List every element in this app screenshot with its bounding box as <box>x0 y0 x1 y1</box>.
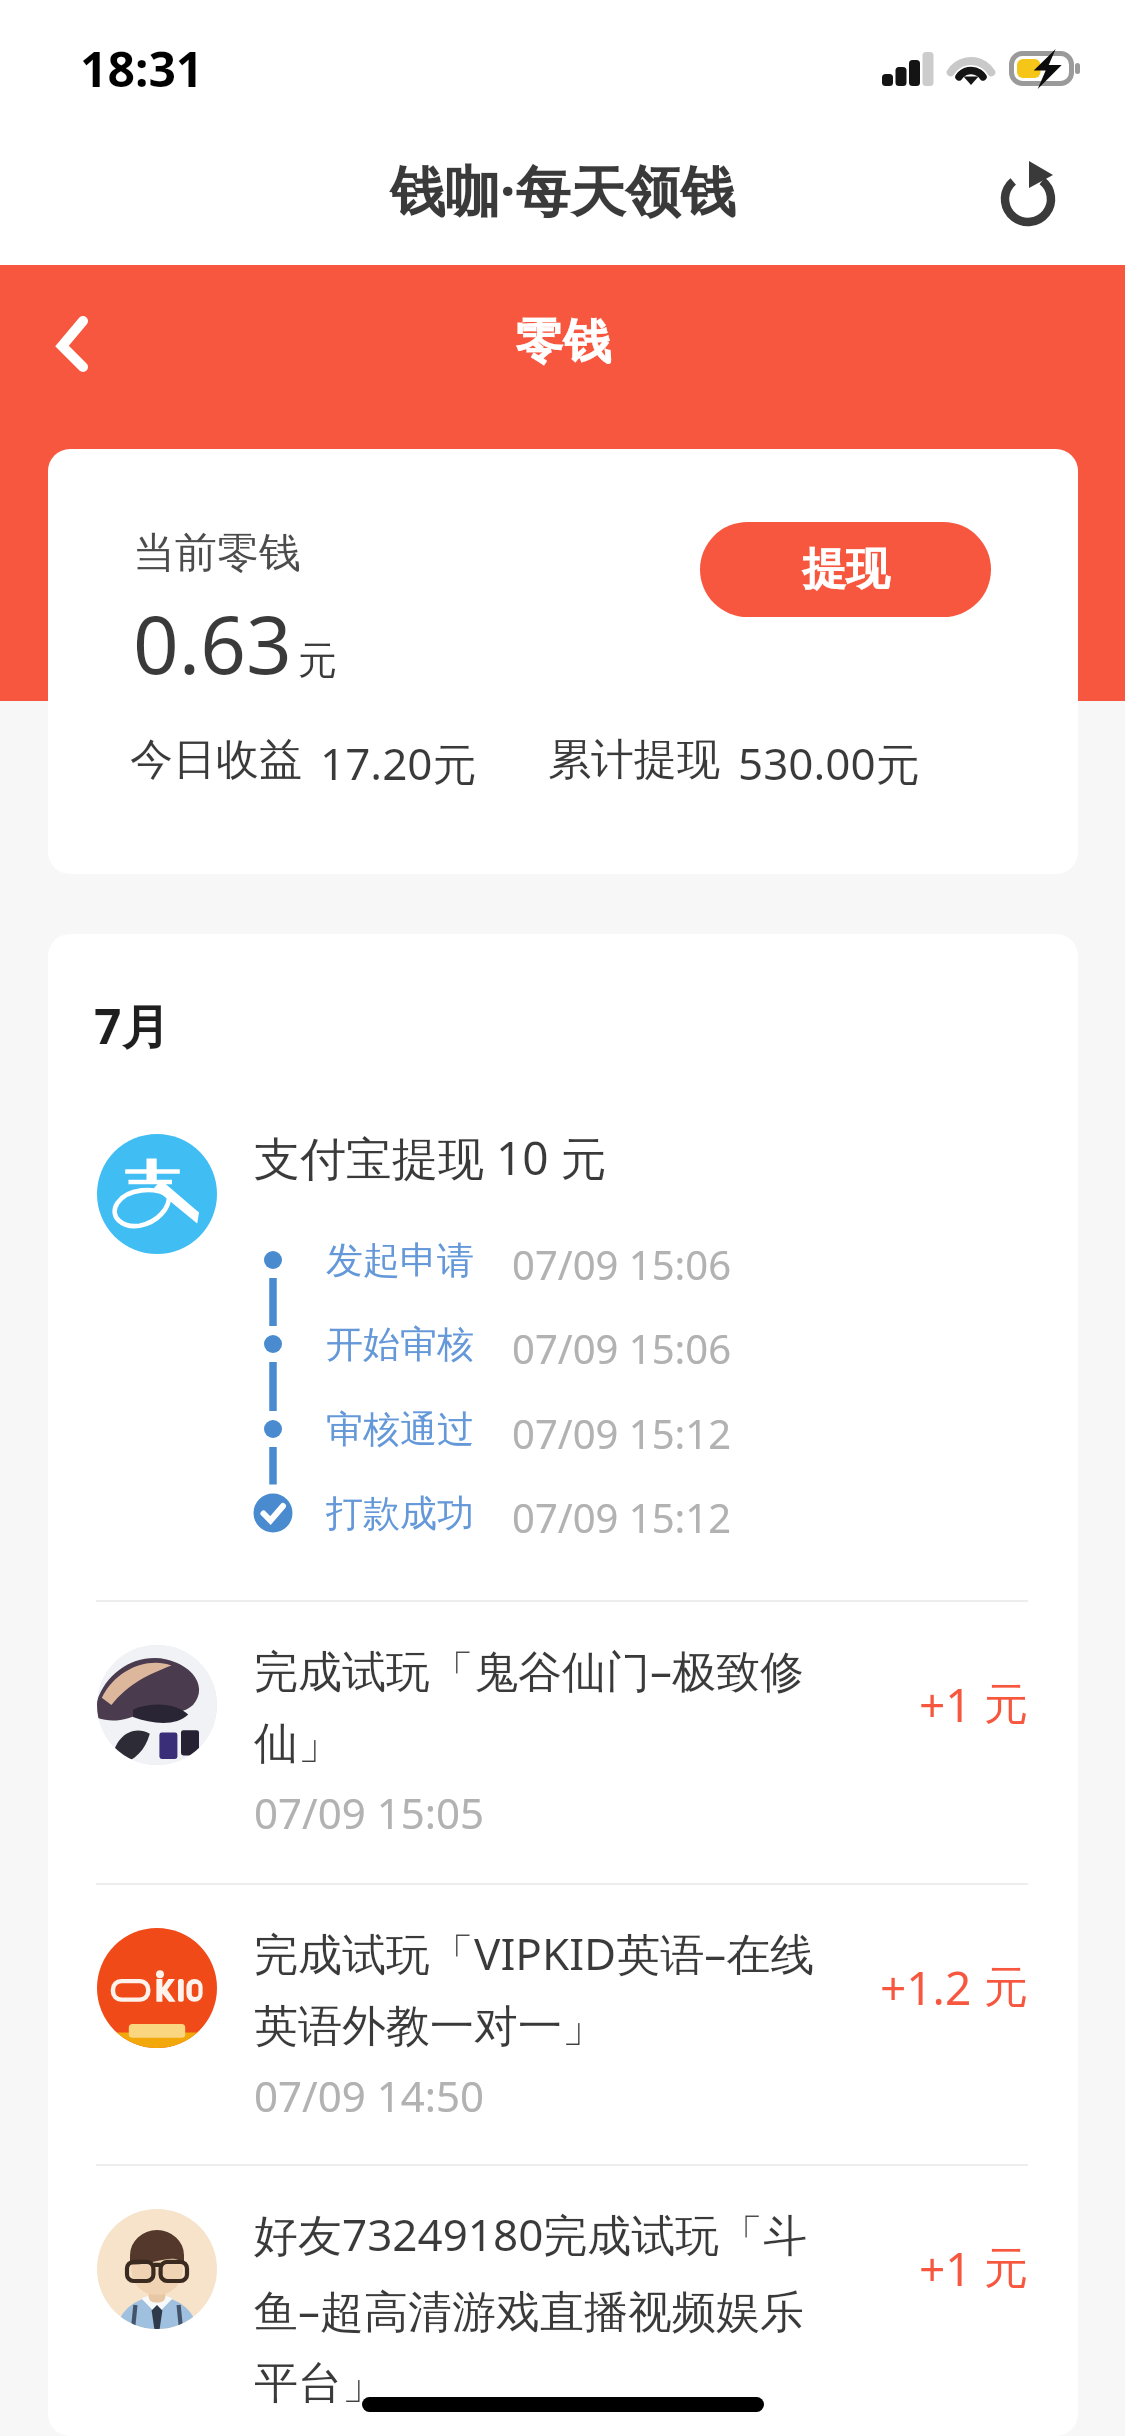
staticText: 18:31 <box>80 36 204 101</box>
staticText: 07/09 15:06 <box>512 1237 732 1291</box>
staticText: 支付宝提现 10 元 <box>254 1126 607 1189</box>
staticText: 0.63 <box>133 588 292 697</box>
button[interactable]: 支付宝提现 10 元 <box>48 1116 1078 1600</box>
staticText: 07/09 14:50 <box>254 2067 484 2124</box>
button[interactable]: 完成试玩「VIPKID英语–在线 <box>48 1885 1078 2164</box>
staticText: 7月 <box>94 993 170 1059</box>
staticText: 英语外教一对一」 <box>254 1999 606 2054</box>
staticText: 审核通过 <box>326 1406 512 1453</box>
staticText: 仙」 <box>254 1716 342 1771</box>
staticText: 07/09 15:05 <box>254 1784 484 1841</box>
staticText: 开始审核 <box>326 1321 512 1368</box>
staticText: 完成试玩「鬼谷仙门–极致修 <box>254 1640 804 1700</box>
staticText: 发起申请 <box>326 1237 512 1284</box>
staticText: 07/09 15:12 <box>512 1490 732 1544</box>
staticText: 好友73249180完成试玩「斗 <box>254 2204 808 2264</box>
staticText: 元 <box>984 1960 1028 2015</box>
button[interactable]: Back <box>40 296 120 376</box>
staticText: 完成试玩「VIPKID英语–在线 <box>254 1923 815 1983</box>
staticText: 打款成功 <box>326 1490 512 1537</box>
staticText: 钱咖·每天领钱 <box>390 152 736 227</box>
staticText: 当前零钱 <box>133 527 301 580</box>
staticText: 平台」 <box>254 2356 386 2411</box>
staticText: 今日收益 <box>130 733 302 787</box>
staticText: +1 <box>919 1673 972 1736</box>
button[interactable]: 完成试玩「鬼谷仙门–极致修 <box>48 1602 1078 1883</box>
staticText: +1.2 <box>880 1956 972 2019</box>
staticText: 累计提现 <box>548 733 720 787</box>
staticText: 07/09 15:12 <box>512 1406 732 1460</box>
staticText: 07/09 15:06 <box>512 1321 732 1375</box>
staticText: 提现 <box>802 542 890 597</box>
staticText: 17.20元 <box>320 733 477 793</box>
button[interactable]: 好友73249180完成试玩「斗 <box>48 2166 1078 2436</box>
staticText: 元 <box>984 2241 1028 2296</box>
staticText: 530.00元 <box>738 733 920 793</box>
button[interactable]: 提现 <box>700 522 991 617</box>
staticText: 元 <box>984 1677 1028 1732</box>
staticText: 元 <box>298 636 337 685</box>
staticText: 零钱 <box>515 312 611 372</box>
staticText: 鱼–超高清游戏直播视频娱乐 <box>254 2280 804 2340</box>
staticText: +1 <box>919 2237 972 2300</box>
button[interactable]: Refresh <box>991 155 1067 231</box>
